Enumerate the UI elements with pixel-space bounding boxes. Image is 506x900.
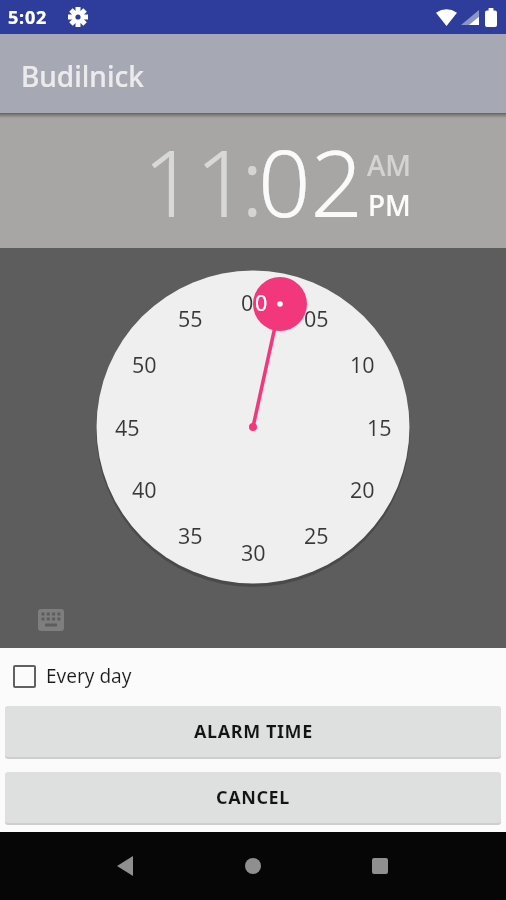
staticText: 30 xyxy=(241,538,266,567)
staticText: 35 xyxy=(178,521,203,550)
staticText: AM xyxy=(367,146,412,180)
button[interactable]: ALARM TIME xyxy=(5,706,501,757)
staticText: 0 xyxy=(255,288,268,317)
button[interactable]: Every day xyxy=(13,663,132,689)
staticText: 05 xyxy=(304,304,329,333)
button[interactable] xyxy=(358,844,402,888)
button[interactable] xyxy=(38,609,64,631)
staticText: CANCEL xyxy=(216,785,290,810)
staticText: Budilnick xyxy=(21,57,144,95)
button[interactable]: CANCEL xyxy=(5,772,501,823)
button[interactable]: PM xyxy=(354,186,424,220)
staticText: 15 xyxy=(367,413,392,442)
staticText: 20 xyxy=(350,475,375,504)
staticText: 02 xyxy=(258,119,364,229)
staticText: 40 xyxy=(132,475,157,504)
staticText: PM xyxy=(368,186,411,220)
staticText: 11 xyxy=(143,119,249,229)
staticText: 5:02 xyxy=(8,5,48,30)
staticText: Every day xyxy=(46,663,132,689)
staticText: 10 xyxy=(350,350,375,379)
staticText: 55 xyxy=(178,304,203,333)
button[interactable] xyxy=(231,844,275,888)
staticText: 25 xyxy=(304,521,329,550)
staticText: 50 xyxy=(132,350,157,379)
staticText: ALARM TIME xyxy=(194,719,313,744)
staticText: : xyxy=(241,118,264,228)
button[interactable]: AM xyxy=(354,146,424,180)
button[interactable] xyxy=(103,844,147,888)
staticText: 00 xyxy=(241,288,266,317)
staticText: 45 xyxy=(115,413,140,442)
